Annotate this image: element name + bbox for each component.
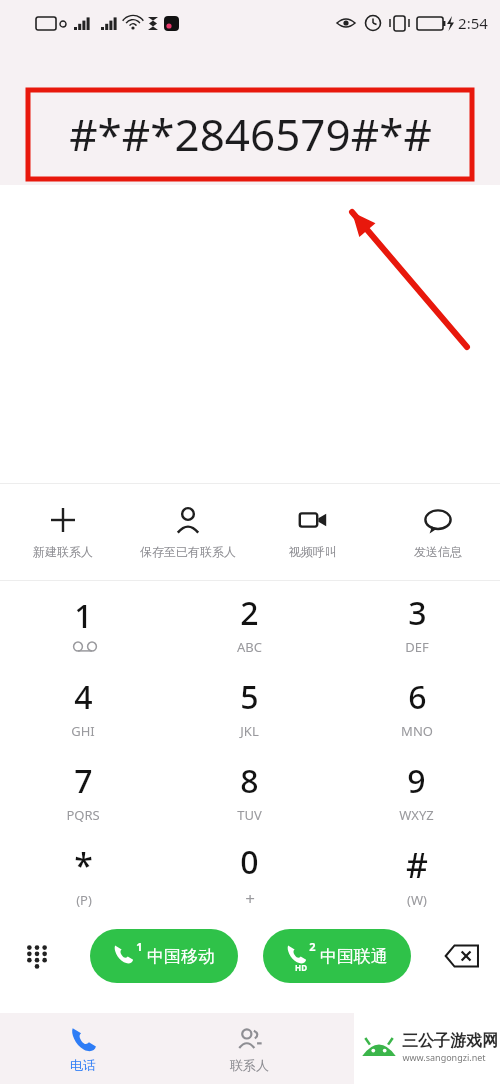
staticText: 1 — [74, 594, 93, 638]
staticText: 2:54 — [458, 13, 488, 33]
staticText: * — [74, 842, 93, 888]
staticText: WXYZ — [399, 806, 434, 824]
button[interactable]: 9 — [333, 749, 500, 833]
staticText: 保存至已有联系人 — [140, 544, 236, 559]
staticText: 新建联系人 — [33, 544, 93, 559]
staticText: MNO — [401, 722, 433, 740]
staticText: # — [406, 842, 428, 888]
staticText: DEF — [405, 638, 429, 656]
staticText: 9 — [407, 759, 426, 803]
staticText: 三公子游戏网 — [402, 1031, 498, 1051]
staticText: (W) — [407, 891, 427, 909]
staticText: 4 — [74, 675, 93, 719]
staticText: (P) — [76, 891, 92, 909]
button[interactable]: 1 — [0, 581, 166, 665]
button[interactable]: 5 — [166, 665, 333, 749]
staticText: 7 — [74, 759, 93, 803]
staticText: 2 — [240, 591, 259, 635]
button[interactable]: 1 — [90, 929, 238, 983]
button[interactable]: Delete — [438, 932, 486, 980]
staticText: 8 — [240, 759, 259, 803]
staticText: 1 — [136, 939, 143, 954]
staticText: 中国联通 — [320, 946, 388, 967]
button[interactable]: 7 — [0, 749, 166, 833]
button[interactable]: 2 — [263, 929, 411, 983]
staticText: 2 — [309, 939, 316, 954]
button[interactable]: Keypad — [14, 933, 60, 979]
button[interactable]: 电话 — [0, 1013, 166, 1084]
button[interactable]: 0 — [166, 833, 333, 917]
staticText: 6 — [408, 675, 427, 719]
button[interactable]: 新建联系人 — [0, 484, 125, 580]
button[interactable]: 视频呼叫 — [250, 484, 375, 580]
button[interactable]: # — [333, 833, 500, 917]
staticText: www.sangongzi.net — [402, 1051, 486, 1063]
button[interactable]: 8 — [166, 749, 333, 833]
staticText: 联系人 — [230, 1057, 269, 1073]
button[interactable]: 6 — [333, 665, 500, 749]
staticText: 视频呼叫 — [289, 544, 337, 559]
staticText: 电话 — [70, 1057, 96, 1073]
button[interactable]: * — [0, 833, 166, 917]
staticText: 中国移动 — [147, 946, 215, 967]
button[interactable]: 发送信息 — [375, 484, 500, 580]
staticText: 5 — [240, 675, 259, 719]
button[interactable]: 2 — [166, 581, 333, 665]
staticText: ABC — [237, 638, 262, 656]
staticText: + — [245, 887, 255, 910]
button[interactable]: More — [333, 1013, 500, 1084]
staticText: TUV — [237, 806, 262, 824]
staticText: #*#*2846579#*# — [69, 104, 432, 164]
staticText: HD — [295, 962, 307, 973]
staticText: 3 — [408, 591, 427, 635]
staticText: PQRS — [66, 806, 100, 824]
staticText: 发送信息 — [414, 544, 462, 559]
button[interactable]: 保存至已有联系人 — [125, 484, 250, 580]
button[interactable]: 3 — [333, 581, 500, 665]
staticText: JKL — [240, 722, 259, 740]
staticText: 0 — [240, 840, 259, 884]
button[interactable]: 4 — [0, 665, 166, 749]
staticText: GHI — [71, 722, 95, 740]
button[interactable]: 联系人 — [166, 1013, 333, 1084]
